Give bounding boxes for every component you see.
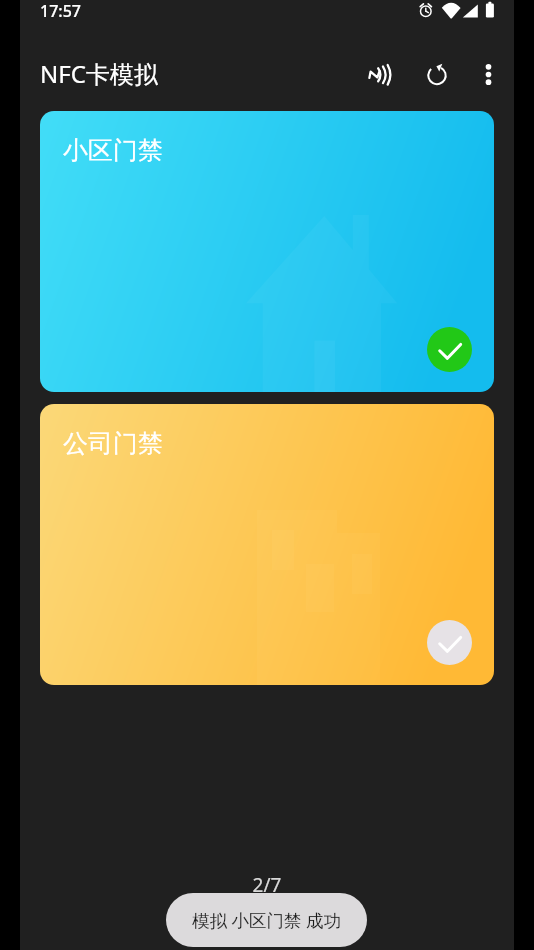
staticText: 小区门禁 [63,135,163,166]
button[interactable]: Active card [427,327,472,372]
button[interactable]: Inactive card [427,620,472,665]
button[interactable]: More options [464,50,512,98]
staticText: 模拟 小区门禁 成功 [192,908,342,932]
staticText: 2/7 [227,872,307,898]
button[interactable]: 公司门禁 [40,404,494,685]
button[interactable]: NFC [356,51,404,99]
staticText: 公司门禁 [63,428,163,459]
button[interactable]: 模拟 小区门禁 成功 [166,893,367,947]
staticText: 17:57 [40,0,81,22]
button[interactable]: 小区门禁 [40,111,494,392]
button[interactable]: Refresh [413,51,461,99]
staticText: NFC卡模拟 [40,57,158,90]
